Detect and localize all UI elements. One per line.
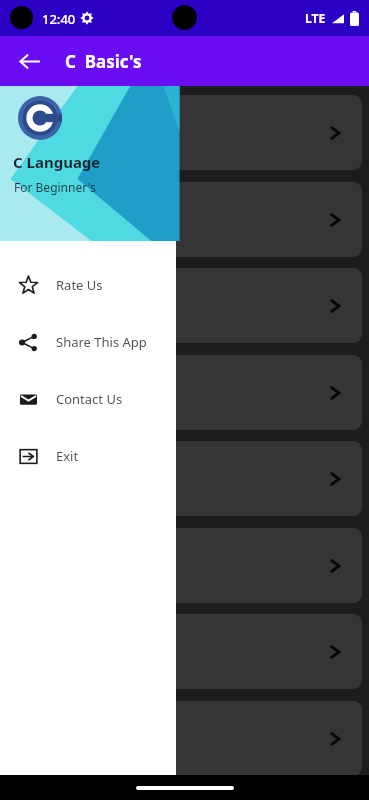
staticText: Operators <box>25 468 326 490</box>
staticText: For Beginner's <box>14 179 96 195</box>
button[interactable]: Data Type <box>7 268 362 343</box>
staticText: Contact Us <box>56 390 123 408</box>
button[interactable]: Booleans <box>7 528 362 603</box>
staticText: Rate Us <box>56 276 103 294</box>
button[interactable]: Operators <box>7 441 362 516</box>
staticText: Variables <box>25 209 326 231</box>
staticText: Share This App <box>56 333 147 351</box>
staticText: Exit <box>56 447 79 465</box>
staticText: Constants <box>25 382 326 404</box>
staticText: Introduction <box>25 122 326 144</box>
button[interactable]: Share This App <box>0 317 176 367</box>
staticText: Switch <box>25 728 326 750</box>
staticText: Data Type <box>25 295 326 317</box>
button[interactable]: Back <box>8 36 50 86</box>
staticText: C Language <box>13 152 101 172</box>
staticText: 12:40 <box>42 10 76 28</box>
button[interactable]: Constants <box>7 355 362 430</box>
button[interactable]: Rate Us <box>0 260 176 310</box>
staticText: LTE <box>305 10 326 26</box>
staticText: If Else <box>25 641 326 663</box>
staticText: C Basic's <box>65 50 142 73</box>
button[interactable]: Exit <box>0 431 176 481</box>
button[interactable]: Switch <box>7 701 362 776</box>
button[interactable]: Introduction <box>7 95 362 170</box>
button[interactable]: Contact Us <box>0 374 176 424</box>
button[interactable]: Variables <box>7 182 362 257</box>
staticText: Booleans <box>25 555 326 577</box>
button[interactable]: If Else <box>7 614 362 689</box>
